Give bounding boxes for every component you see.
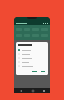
button[interactable] bbox=[18, 52, 46, 56]
button[interactable]: Home bbox=[31, 89, 34, 92]
button[interactable]: More options bbox=[43, 23, 48, 24]
button[interactable] bbox=[40, 70, 46, 73]
button[interactable] bbox=[18, 56, 46, 60]
button[interactable] bbox=[18, 60, 46, 64]
button[interactable]: Back bbox=[19, 89, 22, 92]
button[interactable] bbox=[31, 70, 38, 73]
button[interactable] bbox=[18, 64, 46, 68]
button[interactable]: Recents bbox=[42, 89, 45, 92]
button[interactable] bbox=[18, 48, 46, 52]
